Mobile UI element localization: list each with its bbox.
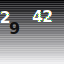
staticText: 4 <box>32 7 43 26</box>
staticText: 2 <box>0 8 10 27</box>
staticText: 9 <box>9 19 20 38</box>
staticText: 2 <box>42 7 53 26</box>
